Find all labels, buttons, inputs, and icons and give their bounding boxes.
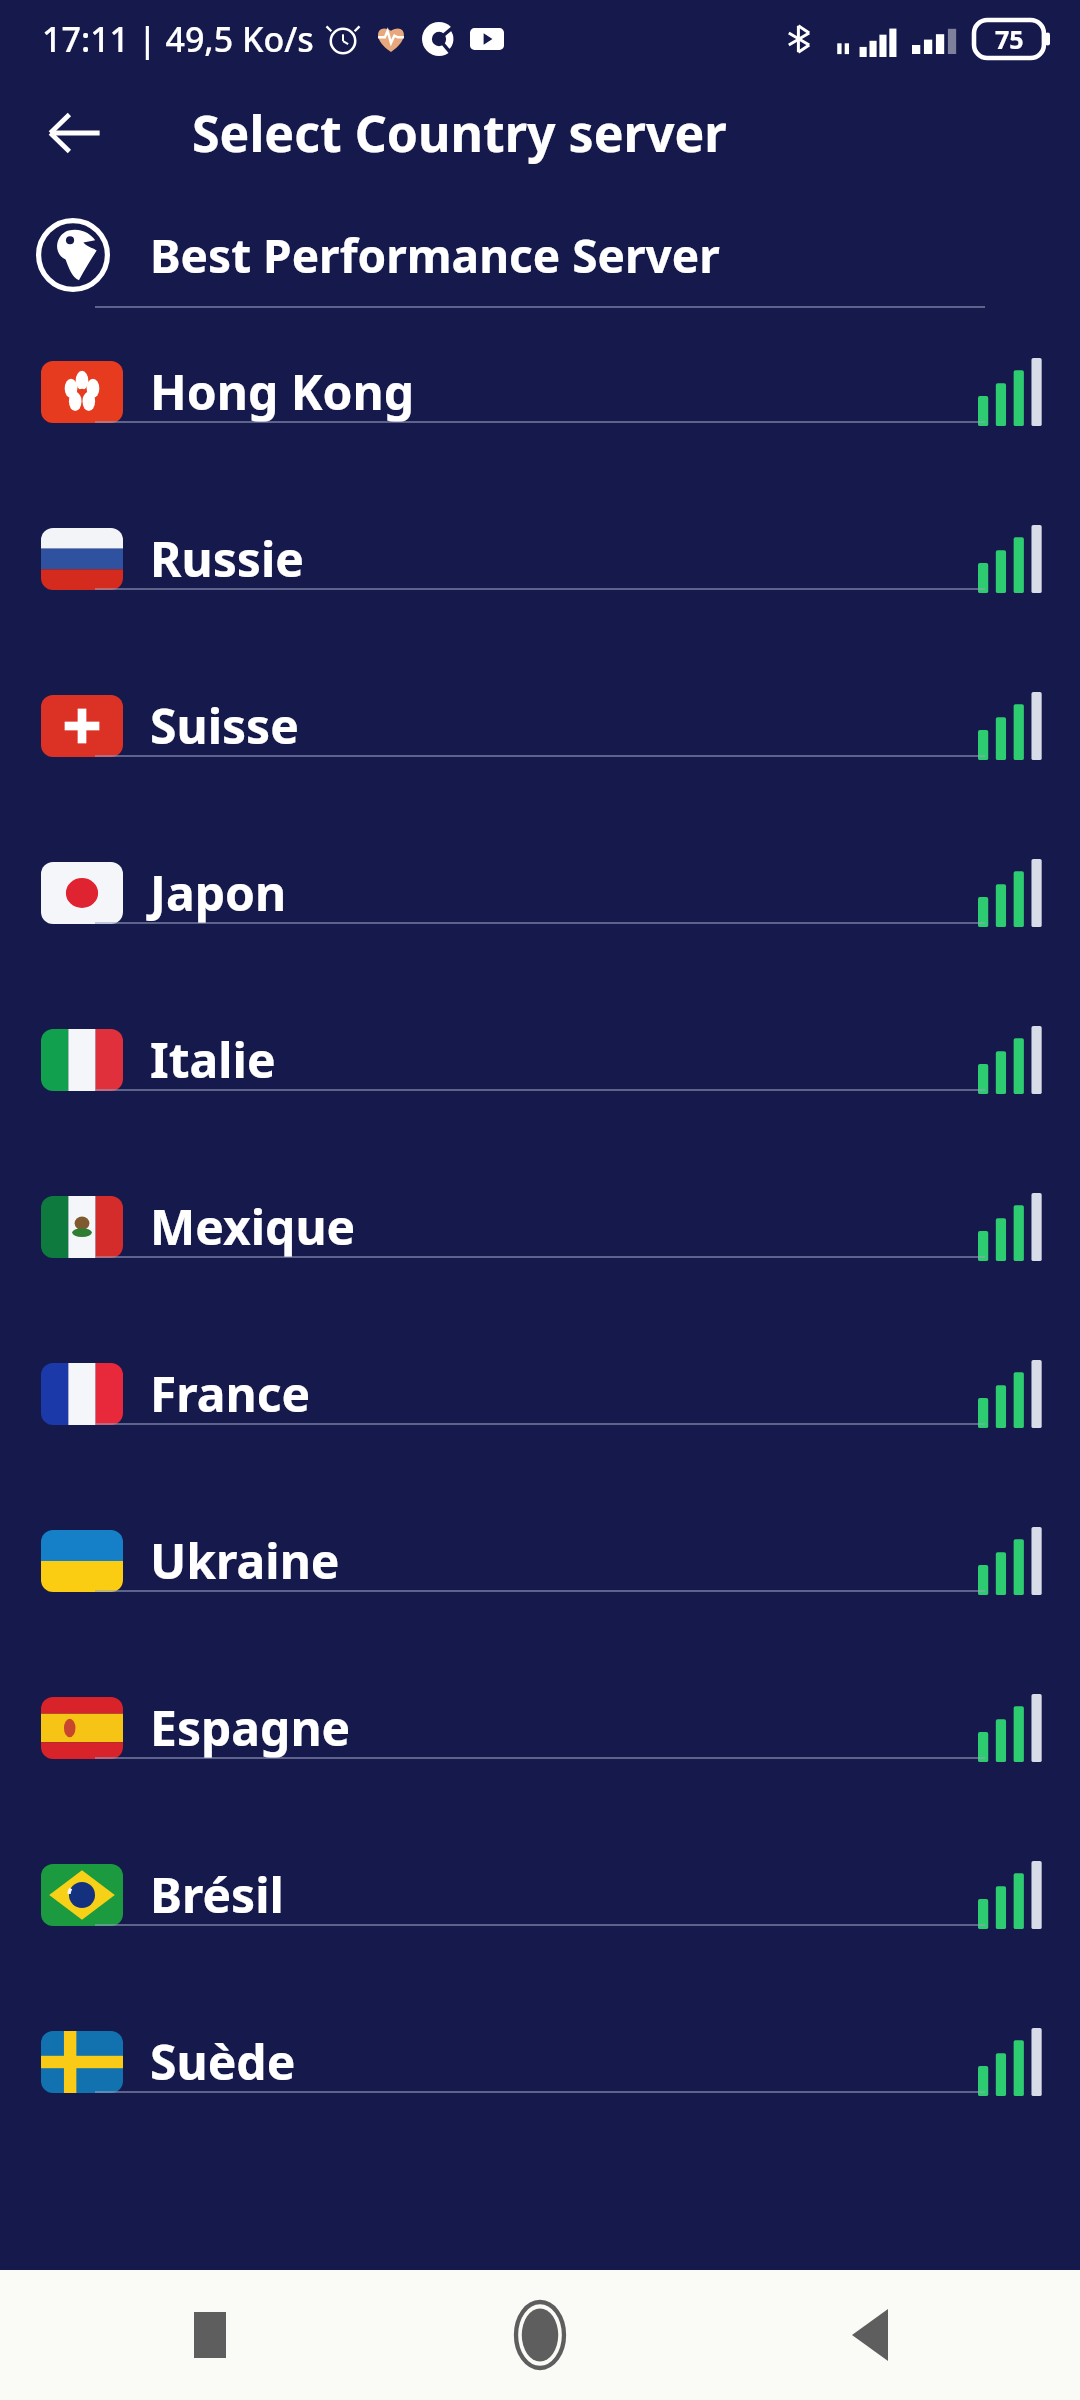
- staticText: Ukraine: [150, 1528, 340, 1593]
- button[interactable]: Ukraine: [0, 1477, 1080, 1644]
- staticText: Russie: [150, 526, 304, 591]
- staticText: Suisse: [150, 693, 299, 758]
- button[interactable]: Espagne: [0, 1644, 1080, 1811]
- button[interactable]: Back: [30, 88, 120, 178]
- button[interactable]: Japon: [0, 809, 1080, 976]
- staticText: Hong Kong: [150, 359, 415, 424]
- staticText: 75: [995, 22, 1024, 56]
- staticText: Select Country server: [192, 99, 727, 167]
- button[interactable]: Hong Kong: [0, 308, 1080, 475]
- button[interactable]: Brésil: [0, 1811, 1080, 1978]
- button[interactable]: France: [0, 1310, 1080, 1477]
- button[interactable]: Recent apps: [160, 2285, 260, 2385]
- button[interactable]: Russie: [0, 475, 1080, 642]
- button[interactable]: Suisse: [0, 642, 1080, 809]
- button[interactable]: Italie: [0, 976, 1080, 1143]
- button[interactable]: Home: [490, 2285, 590, 2385]
- staticText: Best Performance Server: [150, 224, 720, 287]
- staticText: 17:11 | 49,5 Ko/s: [42, 16, 314, 62]
- staticText: Italie: [150, 1027, 276, 1092]
- staticText: Mexique: [150, 1194, 356, 1259]
- staticText: Espagne: [150, 1695, 351, 1760]
- staticText: Japon: [150, 860, 287, 925]
- button[interactable]: Back: [820, 2285, 920, 2385]
- staticText: Suède: [150, 2029, 296, 2094]
- button[interactable]: Best Performance Server: [0, 202, 1080, 308]
- button[interactable]: Suède: [0, 1978, 1080, 2145]
- staticText: France: [150, 1361, 311, 1426]
- staticText: Brésil: [150, 1862, 284, 1927]
- button[interactable]: Mexique: [0, 1143, 1080, 1310]
